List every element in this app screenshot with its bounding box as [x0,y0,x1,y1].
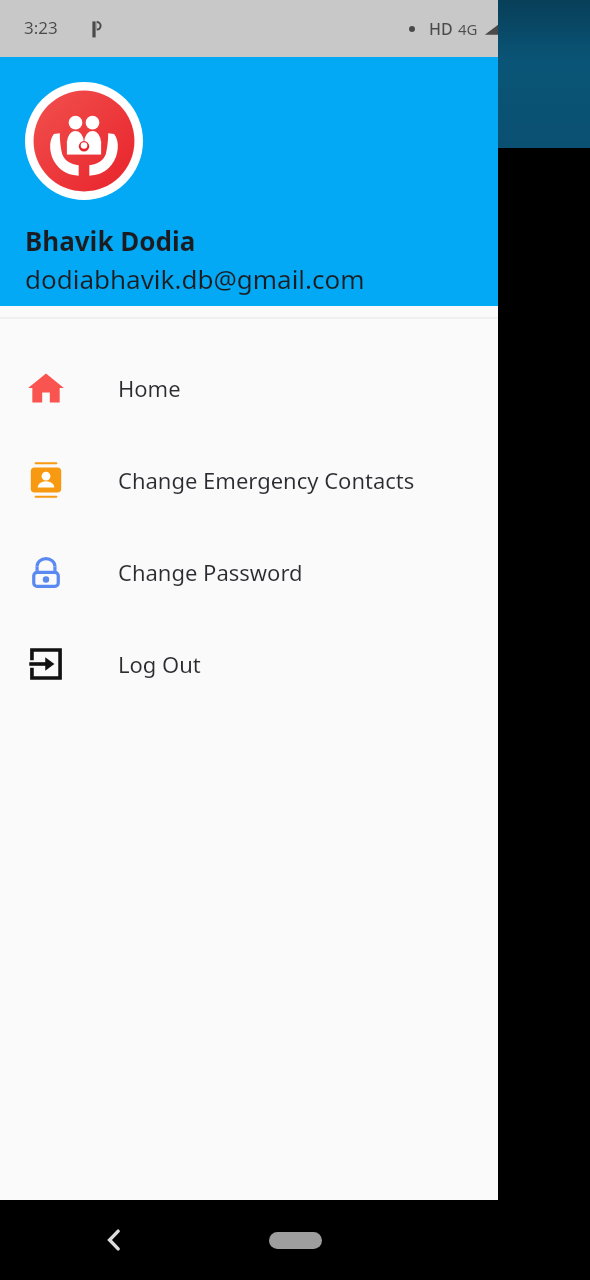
staticText: HD [429,18,453,40]
button[interactable]: Home [250,1220,340,1260]
button[interactable]: Log Out [0,618,498,710]
button[interactable]: Back [90,1216,138,1264]
button[interactable]: Change Password [0,526,498,618]
staticText: Change Password [118,557,303,587]
staticText: dodiabhavik.db@gmail.com [25,261,365,296]
staticText: 4G [458,19,478,39]
staticText: 93% [546,16,582,41]
staticText: Change Emergency Contacts [118,465,415,495]
button[interactable]: Home [0,342,498,434]
staticText: Bhavik Dodia [25,223,196,258]
staticText: Log Out [118,649,201,679]
button[interactable]: Change Emergency Contacts [0,434,498,526]
staticText: Home [118,373,181,403]
staticText: 3:23 [24,16,58,39]
